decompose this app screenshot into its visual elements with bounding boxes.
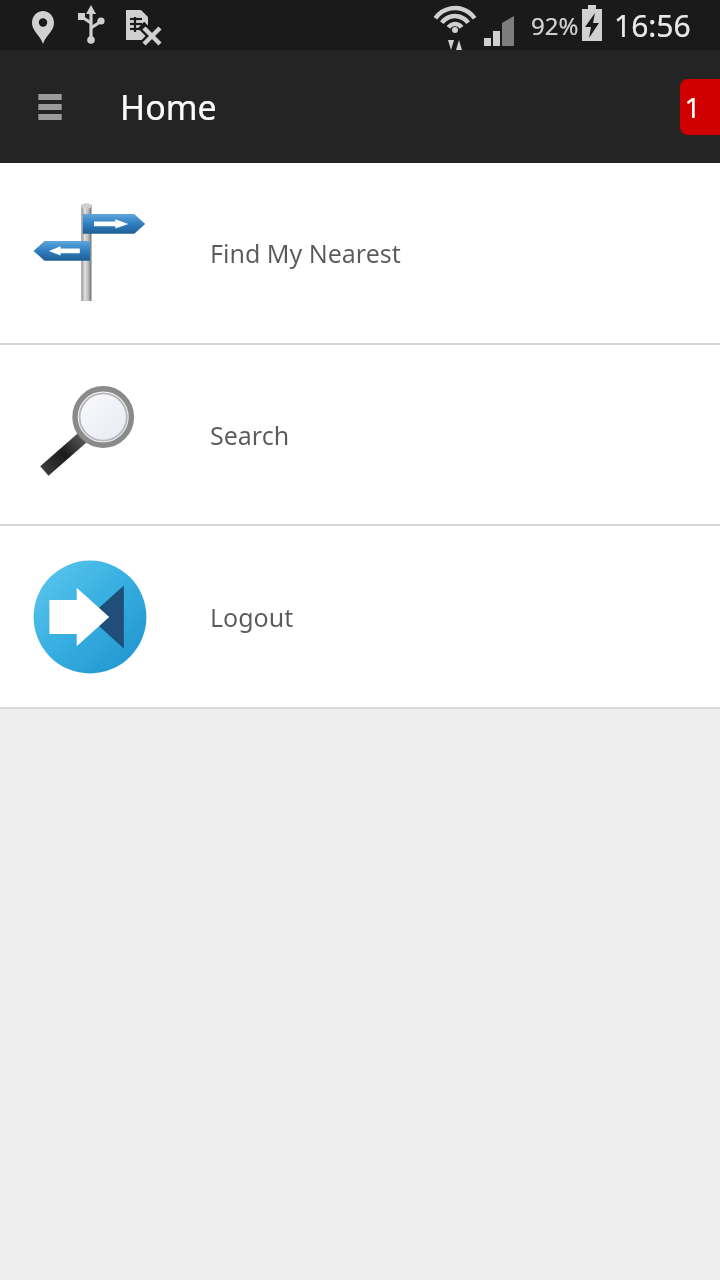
staticText: Logout (210, 600, 294, 634)
button[interactable]: Logout (0, 526, 720, 707)
button[interactable]: Open navigation menu (22, 79, 78, 135)
button[interactable]: Search (0, 345, 720, 524)
staticText: 16:56 (614, 5, 691, 46)
staticText: Find My Nearest (210, 236, 401, 270)
staticText: 1 (684, 88, 701, 126)
staticText: 92% (531, 9, 579, 42)
button[interactable]: Find My Nearest (0, 163, 720, 343)
button[interactable]: Notifications: 1 (680, 79, 720, 135)
staticText: Home (120, 84, 217, 130)
staticText: Search (210, 418, 290, 452)
